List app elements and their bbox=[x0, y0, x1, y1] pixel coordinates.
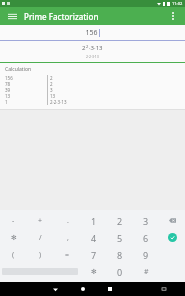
staticText: 1 bbox=[5, 99, 8, 105]
staticText: + bbox=[38, 216, 43, 226]
button[interactable]: 5 bbox=[107, 229, 133, 246]
staticText: 0 bbox=[117, 266, 123, 278]
button[interactable]: Keyboard bbox=[150, 282, 177, 296]
staticText: 3 bbox=[50, 87, 53, 93]
staticText: Calculation bbox=[5, 66, 32, 73]
button[interactable]: = bbox=[54, 246, 81, 263]
button[interactable]: 3 bbox=[133, 212, 159, 229]
button[interactable]: + bbox=[27, 212, 54, 229]
staticText: , bbox=[67, 233, 69, 243]
staticText: 3 bbox=[143, 215, 149, 227]
button[interactable]: 2 bbox=[107, 212, 133, 229]
staticText: 6 bbox=[143, 232, 149, 244]
button[interactable]: Backspace bbox=[159, 212, 185, 229]
staticText: ✻ bbox=[11, 234, 17, 242]
button[interactable]: 6 bbox=[133, 229, 159, 246]
staticText: ) bbox=[39, 250, 42, 260]
staticText: 13 bbox=[50, 93, 56, 99]
button[interactable]: # bbox=[133, 263, 159, 280]
staticText: Prime Factorization bbox=[24, 11, 99, 22]
staticText: 7 bbox=[91, 249, 97, 261]
button[interactable]: ( bbox=[0, 246, 27, 263]
staticText: 9 bbox=[143, 249, 149, 261]
button[interactable]: ✻ bbox=[80, 263, 107, 280]
button[interactable]: - bbox=[0, 212, 27, 229]
staticText: 4 bbox=[91, 232, 97, 244]
staticText: 2·2·3·13 bbox=[50, 99, 67, 105]
staticText: ·3·13 bbox=[89, 44, 103, 52]
staticText: 2 bbox=[50, 81, 53, 87]
staticText: 2·2·3·13 bbox=[86, 54, 99, 59]
button[interactable]: Back bbox=[42, 282, 69, 296]
staticText: 2 bbox=[117, 215, 123, 227]
staticText: ✻ bbox=[91, 268, 97, 276]
staticText: 156 bbox=[85, 28, 98, 38]
staticText: 1 bbox=[91, 215, 97, 227]
button[interactable]: Enter bbox=[159, 229, 185, 246]
button[interactable]: 156 bbox=[0, 25, 185, 40]
staticText: 2 bbox=[50, 75, 53, 81]
staticText: 78 bbox=[5, 81, 11, 87]
staticText: 8 bbox=[117, 249, 123, 261]
staticText: # bbox=[144, 267, 149, 277]
staticText: ( bbox=[12, 250, 15, 260]
button[interactable]: , bbox=[54, 229, 81, 246]
button[interactable]: Open navigation menu bbox=[6, 10, 18, 22]
staticText: / bbox=[39, 233, 42, 243]
button[interactable]: Home bbox=[69, 282, 96, 296]
staticText: 156 bbox=[5, 75, 13, 81]
button[interactable]: 9 bbox=[133, 246, 159, 263]
staticText: 13 bbox=[5, 93, 11, 99]
button[interactable]: 0 bbox=[107, 263, 133, 280]
button[interactable]: / bbox=[27, 229, 54, 246]
staticText: 39 bbox=[5, 87, 11, 93]
staticText: . bbox=[67, 216, 69, 226]
staticText: 11:02 bbox=[172, 1, 183, 6]
button[interactable]: 7 bbox=[81, 246, 107, 263]
button[interactable]: More options bbox=[167, 10, 179, 22]
staticText: 2 bbox=[82, 44, 86, 52]
staticText: 5 bbox=[117, 232, 123, 244]
button[interactable]: 4 bbox=[81, 229, 107, 246]
button[interactable]: 1 bbox=[81, 212, 107, 229]
button[interactable]: ) bbox=[27, 246, 54, 263]
staticText: = bbox=[65, 250, 70, 260]
button[interactable]: 8 bbox=[107, 246, 133, 263]
staticText: 2 bbox=[86, 44, 89, 49]
staticText: - bbox=[12, 216, 15, 226]
button[interactable]: Recent apps bbox=[96, 282, 123, 296]
button[interactable]: ✻ bbox=[0, 229, 27, 246]
